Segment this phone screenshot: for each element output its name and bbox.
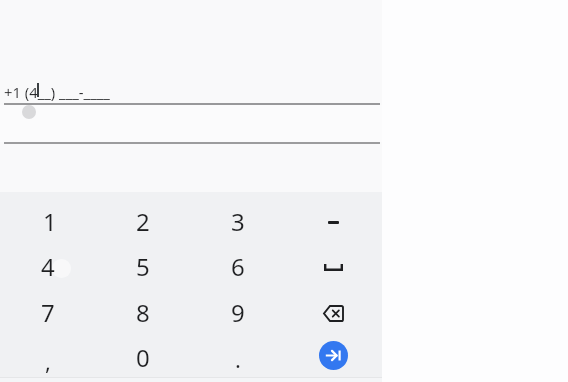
staticText: . [235, 344, 241, 374]
button[interactable]: 4 [1, 245, 95, 289]
button[interactable]: . [191, 336, 285, 380]
button[interactable] [286, 245, 380, 289]
button[interactable]: 1 [1, 200, 95, 244]
button[interactable] [22, 105, 36, 119]
button[interactable]: 7 [1, 291, 95, 335]
staticText: 3 [231, 205, 245, 238]
staticText: +1 (4__) ___-____ [4, 82, 110, 102]
staticText: 9 [231, 296, 245, 329]
staticText: 5 [136, 250, 150, 283]
staticText: 6 [231, 250, 245, 283]
staticText: 2 [136, 205, 150, 238]
staticText: 1 [43, 205, 57, 238]
staticText: 0 [136, 341, 150, 374]
staticText: 8 [136, 296, 150, 329]
button[interactable]: , [1, 336, 95, 380]
button[interactable] [286, 291, 380, 335]
button[interactable]: 5 [96, 245, 190, 289]
button[interactable]: 9 [191, 291, 285, 335]
button[interactable]: 3 [191, 200, 285, 244]
button[interactable] [286, 336, 380, 380]
button[interactable]: 8 [96, 291, 190, 335]
staticText: 4 [41, 250, 55, 283]
button[interactable]: 6 [191, 245, 285, 289]
button[interactable] [286, 200, 380, 244]
button[interactable]: 0 [96, 336, 190, 380]
button[interactable]: 2 [96, 200, 190, 244]
staticText: , [45, 346, 51, 376]
staticText: 7 [41, 296, 55, 329]
